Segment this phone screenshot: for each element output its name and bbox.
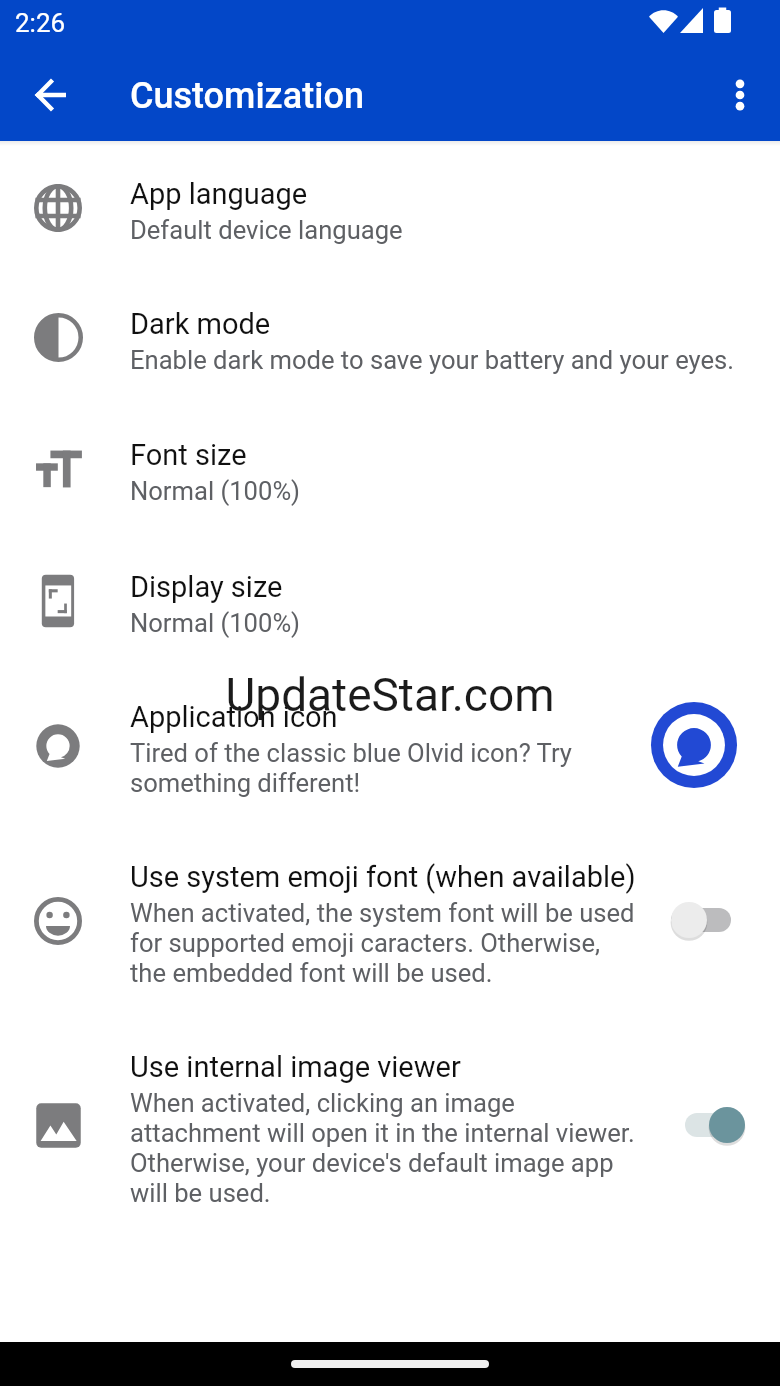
staticText: App language: [130, 177, 308, 211]
staticText: Use system emoji font (when available): [130, 860, 636, 894]
button[interactable]: Application icon: [0, 645, 780, 805]
button[interactable]: More options: [708, 63, 772, 127]
button[interactable]: Switch on: [685, 1102, 745, 1148]
button[interactable]: Back: [19, 63, 83, 127]
staticText: UpdateStar.com: [225, 668, 555, 722]
staticText: Application icon: [130, 700, 338, 734]
staticText: When activated, clicking an image attach…: [130, 1089, 637, 1209]
staticText: Customization: [130, 75, 364, 117]
staticText: Dark mode: [130, 307, 271, 341]
staticText: Font size: [130, 438, 247, 472]
button[interactable]: Dark mode: [0, 252, 780, 382]
button[interactable]: Switch off: [671, 897, 731, 943]
button[interactable]: Use internal image viewer: [0, 995, 780, 1215]
staticText: Tired of the classic blue Olvid icon? Tr…: [130, 739, 637, 799]
staticText: Use internal image viewer: [130, 1050, 461, 1084]
staticText: Default device language: [130, 216, 403, 246]
button[interactable]: Display size: [0, 513, 780, 645]
staticText: 2:26: [15, 8, 66, 38]
staticText: Enable dark mode to save your battery an…: [130, 346, 735, 376]
staticText: When activated, the system font will be …: [130, 899, 637, 989]
button[interactable]: Font size: [0, 382, 780, 513]
button[interactable]: Use system emoji font (when available): [0, 805, 780, 995]
staticText: Normal (100%): [130, 609, 301, 639]
staticText: Display size: [130, 570, 283, 604]
button[interactable]: App language: [0, 146, 780, 252]
staticText: Normal (100%): [130, 477, 301, 507]
